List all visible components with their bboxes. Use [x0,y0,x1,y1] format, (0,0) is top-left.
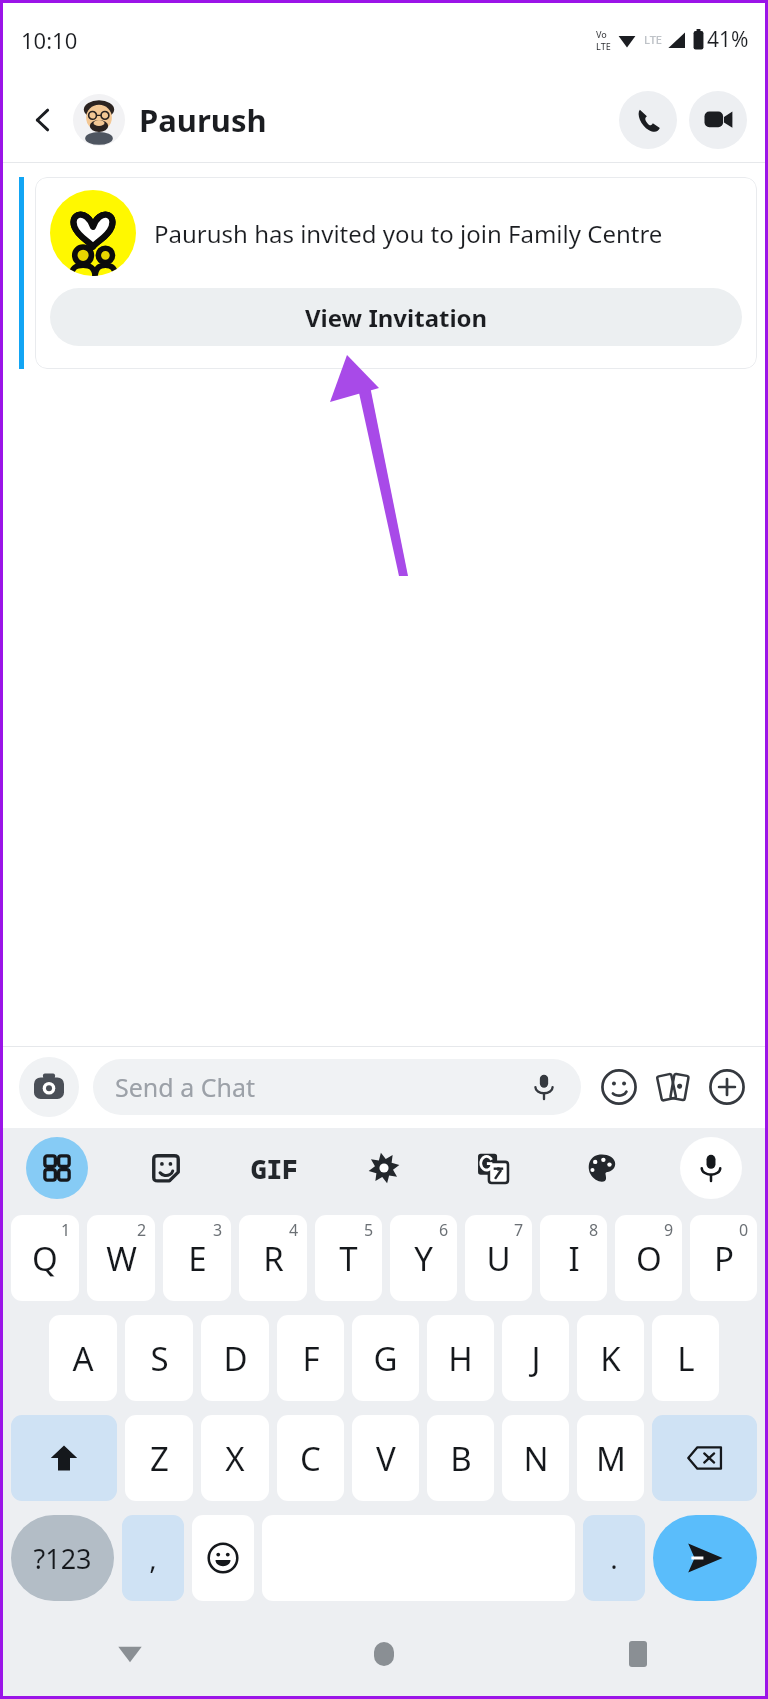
staticText: F [302,1336,320,1381]
button[interactable]: S [125,1315,193,1401]
staticText: S [150,1336,169,1381]
staticText: 6 [439,1219,449,1241]
button[interactable]: . [583,1515,645,1601]
staticText: ?123 [33,1540,92,1577]
button[interactable]: G [352,1315,419,1401]
button[interactable]: View Invitation [50,288,742,346]
button[interactable]: I [540,1215,607,1301]
staticText: 8 [589,1219,599,1241]
staticText: Y [414,1236,433,1281]
button[interactable]: Keyboard apps [26,1137,88,1199]
staticText: Q [32,1236,58,1281]
button[interactable]: F [277,1315,344,1401]
staticText: R [263,1236,284,1281]
button[interactable]: T [315,1215,382,1301]
button[interactable]: send [653,1515,757,1601]
button[interactable]: Video call [689,91,747,149]
button[interactable]: U [465,1215,532,1301]
staticText: P [714,1236,734,1281]
staticText: . [610,1539,618,1577]
button[interactable]: Voice [529,1072,559,1102]
button[interactable]: W [87,1215,155,1301]
staticText: 9 [664,1219,674,1241]
button[interactable]: E [163,1215,231,1301]
button[interactable]: Q [11,1215,79,1301]
button[interactable]: Theme [547,1128,656,1208]
button[interactable]: shift [11,1415,117,1501]
staticText: 4 [289,1219,299,1241]
button[interactable]: More [705,1065,749,1109]
button[interactable]: C [277,1415,344,1501]
staticText: , [149,1539,157,1577]
button[interactable]: Paurush [139,99,619,141]
button[interactable]: Z [125,1415,193,1501]
button[interactable]: B [427,1415,494,1501]
staticText: B [450,1436,472,1481]
staticText: O [636,1236,662,1281]
staticText: 7 [514,1219,524,1241]
staticText: A [72,1336,94,1381]
button[interactable]: Home [257,1612,511,1696]
button[interactable]: , [122,1515,184,1601]
button[interactable]: X [201,1415,269,1501]
staticText: E [188,1236,207,1281]
staticText: C [300,1436,321,1481]
staticText: X [225,1436,245,1481]
staticText: 10:10 [21,25,78,55]
staticText: 1 [61,1219,71,1241]
button[interactable]: Back [21,98,65,142]
button[interactable]: Profile avatar [73,94,125,146]
staticText: 41% [707,25,749,54]
button[interactable]: N [502,1415,569,1501]
button[interactable]: J [502,1315,569,1401]
staticText: L [677,1336,695,1381]
staticText: 2 [137,1219,147,1241]
staticText: LTE [596,40,611,52]
button[interactable]: D [201,1315,269,1401]
button[interactable]: Paurush has invited you to join Family C… [35,177,757,369]
button[interactable]: K [577,1315,644,1401]
button[interactable]: O [615,1215,682,1301]
staticText: LTE [644,32,662,47]
button[interactable]: Stickers [597,1065,641,1109]
button[interactable]: Translate [438,1128,547,1208]
staticText: U [486,1236,511,1281]
button[interactable]: H [427,1315,494,1401]
button[interactable]: L [652,1315,719,1401]
staticText: Send a Chat [115,1070,255,1104]
button[interactable]: Y [390,1215,457,1301]
button[interactable]: emoji [192,1515,254,1601]
staticText: View Invitation [305,301,488,334]
button[interactable]: Voice input [680,1137,742,1199]
staticText: W [106,1236,137,1281]
staticText: Z [150,1436,169,1481]
staticText: 3 [213,1219,223,1241]
button[interactable]: Recent apps [511,1612,765,1696]
staticText: Vo [596,28,607,40]
staticText: M [596,1436,626,1481]
staticText: K [600,1336,621,1381]
staticText: I [568,1236,580,1281]
staticText: D [223,1336,248,1381]
button[interactable]: V [352,1415,419,1501]
button[interactable]: P [690,1215,757,1301]
button[interactable]: Settings [329,1128,438,1208]
button[interactable]: GIF [220,1128,329,1208]
staticText: G [373,1336,398,1381]
button[interactable]: M [577,1415,644,1501]
button[interactable]: R [239,1215,307,1301]
staticText: 5 [364,1219,374,1241]
button[interactable]: ?123 [11,1515,114,1601]
button[interactable]: Send a Chat [93,1059,581,1115]
button[interactable]: Camera [19,1057,79,1117]
button[interactable]: Back [3,1612,257,1696]
button[interactable]: Memories [651,1065,695,1109]
button[interactable]: Call [619,91,677,149]
staticText: J [531,1336,541,1381]
button[interactable]: A [49,1315,117,1401]
button[interactable]: del [652,1415,757,1501]
staticText: GIF [251,1151,298,1186]
staticText: N [523,1436,549,1481]
button[interactable]: Sticker [111,1128,220,1208]
